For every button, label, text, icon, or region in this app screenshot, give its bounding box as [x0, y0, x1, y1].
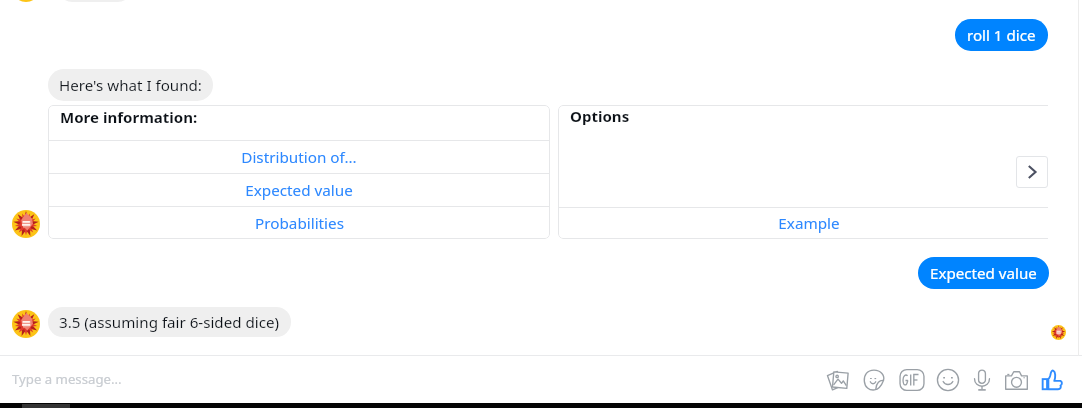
button[interactable]: Camera	[1000, 364, 1032, 396]
button[interactable]: Send a like	[1037, 364, 1069, 396]
button[interactable]: 3.5 (assuming fair 6-sided dice)	[48, 307, 291, 337]
button[interactable]	[57, 0, 133, 2]
button[interactable]: Emoji	[932, 364, 964, 396]
button[interactable]: Example	[558, 208, 1048, 239]
button[interactable]: Photos	[822, 364, 854, 396]
staticText: roll 1 dice	[967, 25, 1036, 46]
staticText: 3.5 (assuming fair 6-sided dice)	[59, 312, 280, 333]
button[interactable]: roll 1 dice	[955, 19, 1048, 51]
button[interactable]: Here's what I found:	[48, 69, 213, 101]
button[interactable]: Voice message	[966, 364, 998, 396]
staticText: Options	[570, 106, 630, 126]
staticText: Type a message...	[12, 370, 122, 388]
button[interactable]: Stickers	[858, 364, 890, 396]
staticText: Expected value	[245, 180, 353, 201]
button[interactable]: Next card	[1016, 156, 1048, 188]
button[interactable]: Expected value	[918, 257, 1049, 289]
staticText: Distribution of...	[241, 147, 357, 168]
button[interactable]: GIFs	[896, 364, 928, 396]
staticText: Probabilities	[255, 213, 344, 234]
staticText: More information:	[60, 107, 198, 127]
button[interactable]: Distribution of...	[48, 141, 550, 173]
button[interactable]: Probabilities	[48, 207, 550, 239]
button[interactable]: Expected value	[48, 174, 550, 206]
staticText: Example	[778, 213, 840, 234]
staticText: Here's what I found:	[59, 75, 202, 96]
staticText: Expected value	[930, 263, 1037, 284]
